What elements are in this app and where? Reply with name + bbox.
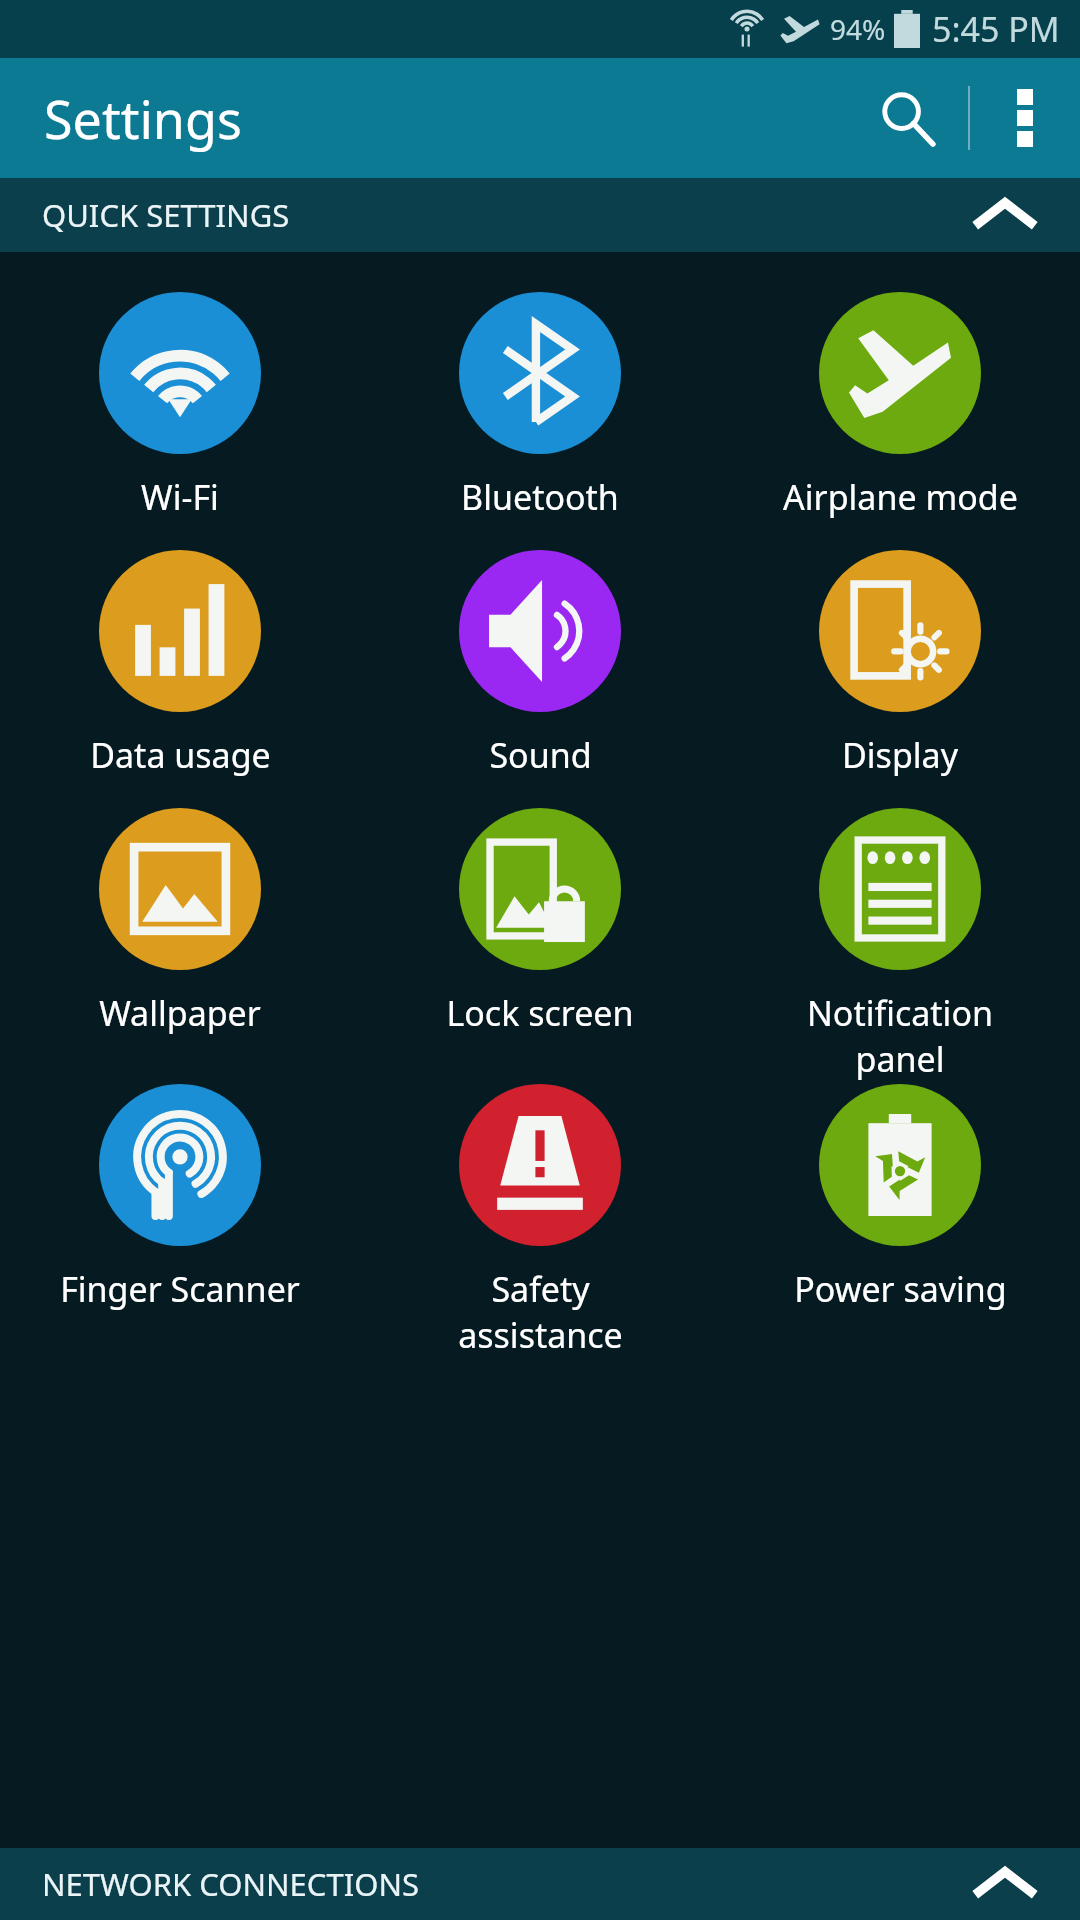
button[interactable]: Wallpaper xyxy=(0,808,360,1036)
staticText: Bluetooth xyxy=(461,474,619,520)
button[interactable]: Airplane mode xyxy=(720,292,1080,520)
button[interactable]: Safety assistance xyxy=(360,1084,720,1358)
button[interactable]: Bluetooth xyxy=(360,292,720,520)
button[interactable]: Data usage xyxy=(0,550,360,778)
staticText: Settings xyxy=(44,83,242,154)
button[interactable]: Notification panel xyxy=(720,808,1080,1082)
staticText: Wallpaper xyxy=(99,990,261,1036)
staticText: Display xyxy=(842,732,958,778)
staticText: Wi-Fi xyxy=(141,474,219,520)
button[interactable]: Finger Scanner xyxy=(0,1084,360,1312)
staticText: Finger Scanner xyxy=(60,1266,300,1312)
button[interactable]: Search xyxy=(848,58,968,178)
staticText: 94% xyxy=(830,10,886,48)
staticText: Lock screen xyxy=(446,990,634,1036)
staticText: NETWORK CONNECTIONS xyxy=(42,1863,419,1905)
button[interactable]: NETWORK CONNECTIONS xyxy=(0,1848,1080,1920)
button[interactable]: Lock screen xyxy=(360,808,720,1036)
staticText: Notification panel xyxy=(807,990,993,1082)
button[interactable]: Power saving xyxy=(720,1084,1080,1312)
button[interactable]: QUICK SETTINGS xyxy=(0,178,1080,252)
staticText: QUICK SETTINGS xyxy=(42,194,290,236)
staticText: Power saving xyxy=(794,1266,1007,1312)
button[interactable]: Sound xyxy=(360,550,720,778)
staticText: Data usage xyxy=(90,732,271,778)
button[interactable]: Display xyxy=(720,550,1080,778)
staticText: Airplane mode xyxy=(783,474,1018,520)
button[interactable]: More options xyxy=(970,58,1080,178)
staticText: Safety assistance xyxy=(458,1266,623,1358)
staticText: Sound xyxy=(489,732,592,778)
button[interactable]: Wi-Fi xyxy=(0,292,360,520)
staticText: 5:45 PM xyxy=(932,6,1060,52)
